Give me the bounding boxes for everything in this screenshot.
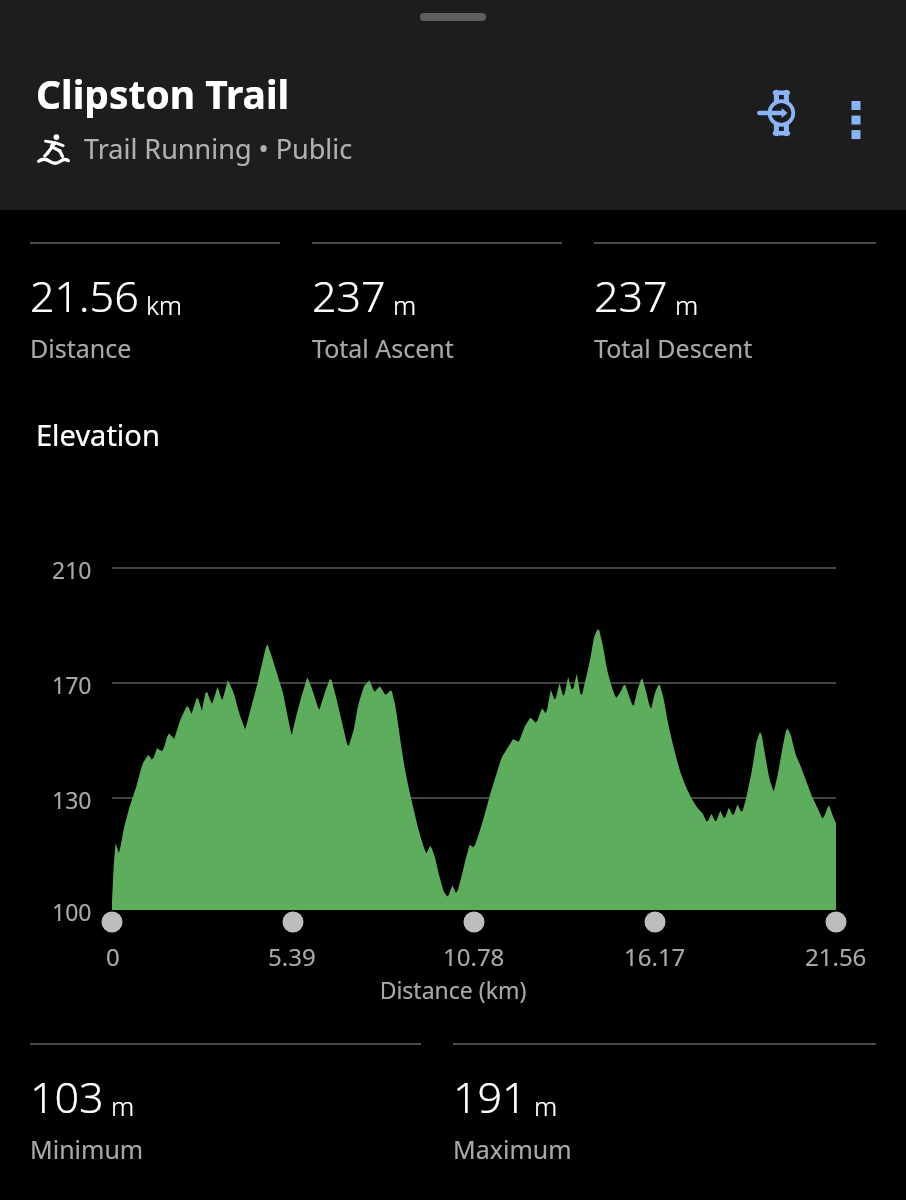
staticText: 191: [453, 1067, 527, 1126]
staticText: Total Ascent: [312, 331, 454, 365]
staticText: 21.56: [805, 940, 867, 973]
staticText: Clipston Trail: [36, 67, 290, 120]
staticText: Distance (km): [0, 974, 906, 1005]
staticText: Maximum: [453, 1132, 572, 1166]
staticText: Minimum: [30, 1132, 144, 1166]
button[interactable]: More options: [828, 85, 884, 141]
staticText: 103: [30, 1067, 104, 1126]
staticText: 237: [594, 266, 668, 325]
staticText: m: [393, 287, 417, 322]
button[interactable]: 191: [453, 1043, 876, 1166]
staticText: 10.78: [443, 940, 505, 973]
button[interactable]: 237: [594, 242, 876, 365]
staticText: Distance: [30, 331, 132, 365]
staticText: Elevation: [36, 415, 160, 454]
button[interactable]: 21.56: [30, 242, 280, 365]
button[interactable]: 237: [312, 242, 562, 365]
staticText: Total Descent: [594, 331, 753, 365]
staticText: 170: [52, 669, 92, 700]
staticText: 0: [106, 940, 120, 973]
staticText: m: [111, 1088, 135, 1123]
button[interactable]: 103: [30, 1043, 421, 1166]
staticText: 210: [52, 554, 92, 585]
button[interactable]: Send to watch: [746, 82, 808, 144]
staticText: 237: [312, 266, 386, 325]
staticText: 100: [52, 896, 92, 927]
staticText: Trail Running • Public: [84, 130, 353, 167]
staticText: 130: [52, 784, 92, 815]
staticText: m: [534, 1088, 558, 1123]
staticText: km: [146, 287, 183, 322]
staticText: 5.39: [268, 940, 316, 973]
staticText: m: [675, 287, 699, 322]
staticText: 16.17: [624, 940, 686, 973]
staticText: 21.56: [30, 266, 139, 325]
